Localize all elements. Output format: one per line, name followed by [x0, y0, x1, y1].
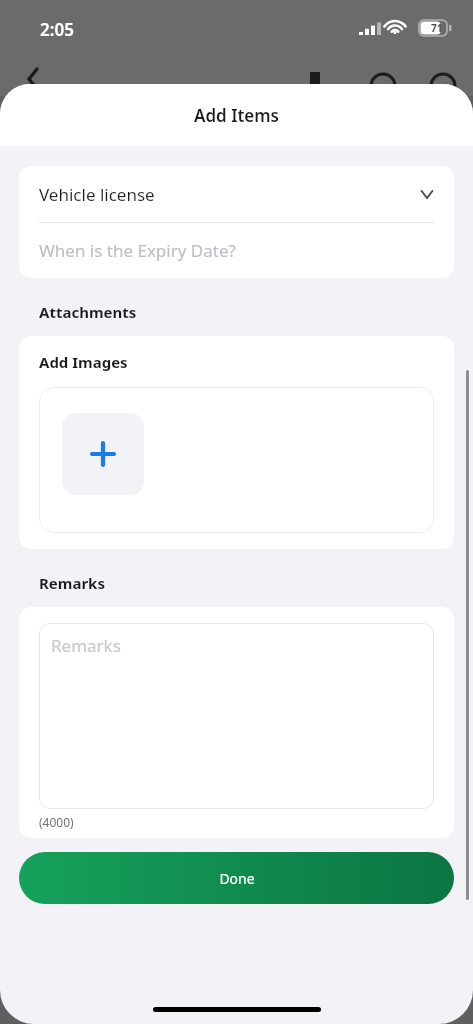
staticText: (4000): [39, 814, 74, 830]
button[interactable]: Done: [19, 852, 454, 904]
staticText: Remarks: [51, 634, 121, 657]
staticText: Add Images: [39, 352, 128, 372]
staticText: Done: [219, 869, 255, 888]
staticText: Add Items: [194, 104, 279, 127]
button[interactable]: Vehicle license: [19, 166, 454, 222]
staticText: Attachments: [39, 302, 137, 322]
button[interactable]: Add image: [62, 413, 144, 495]
staticText: 71: [431, 21, 443, 35]
staticText: 2:05: [40, 18, 74, 41]
staticText: When is the Expiry Date?: [39, 239, 236, 262]
staticText: Remarks: [39, 573, 105, 593]
staticText: Vehicle license: [39, 183, 155, 206]
button[interactable]: When is the Expiry Date?: [19, 223, 454, 278]
button[interactable]: Remarks: [39, 623, 434, 809]
